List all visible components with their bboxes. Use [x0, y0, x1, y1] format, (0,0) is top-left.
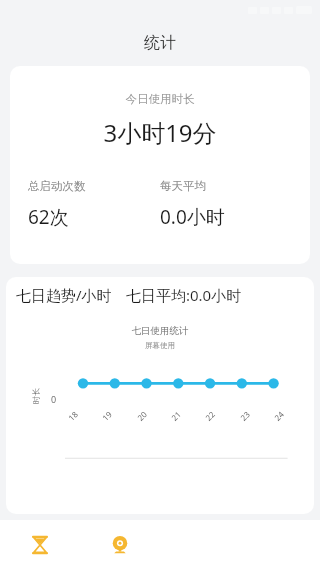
staticText: 18 [66, 408, 80, 423]
staticText: 62次 [28, 204, 69, 230]
staticText: 0.0小时 [160, 204, 225, 230]
button[interactable]: 今日使用时长 [10, 66, 310, 264]
staticText: 七日趋势/小时 [16, 285, 112, 305]
button[interactable]: 监控 [80, 520, 160, 569]
staticText: 屏幕使用 [6, 341, 314, 350]
staticText: 七日平均:0.0小时 [126, 285, 242, 305]
staticText: 统计 [144, 33, 176, 53]
button[interactable]: 七日趋势/小时 [6, 277, 314, 514]
staticText: 21 [169, 408, 183, 423]
staticText: 23 [238, 408, 252, 423]
staticText: 今日使用时长 [10, 92, 310, 106]
staticText: 0 [51, 393, 57, 405]
staticText: 20 [135, 408, 149, 423]
button[interactable]: 使用时长 [0, 520, 80, 569]
staticText: 19 [100, 408, 114, 423]
staticText: 七日使用统计 [6, 325, 314, 337]
staticText: 时长 [31, 388, 41, 404]
staticText: 3小时19分 [10, 116, 310, 149]
staticText: 总启动次数 [28, 179, 86, 193]
staticText: 24 [272, 408, 286, 423]
staticText: 每天平均 [160, 179, 206, 193]
staticText: 22 [203, 408, 217, 423]
